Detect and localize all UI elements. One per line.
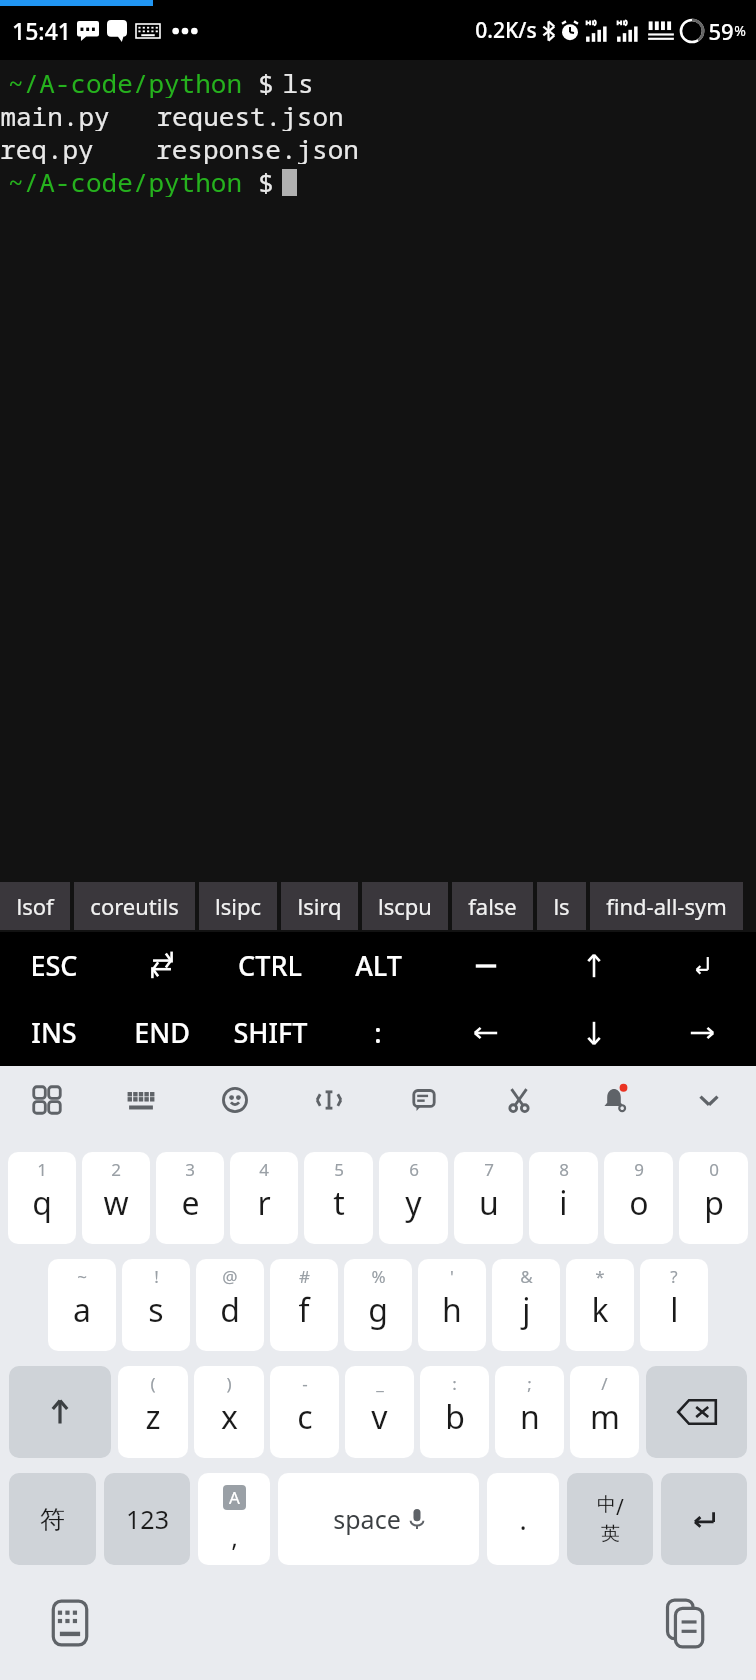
staticText: & [520,1265,533,1288]
staticText: w [103,1181,129,1225]
button[interactable]: 123 [104,1473,190,1565]
button[interactable]: Backspace [646,1366,747,1458]
button[interactable]: ALT [324,932,432,999]
button[interactable]: left [432,999,540,1066]
button[interactable]: Shift [9,1366,111,1458]
staticText: A [229,1486,240,1509]
button[interactable]: / [570,1366,639,1458]
staticText: v [371,1395,388,1439]
button[interactable]: _ [345,1366,414,1458]
staticText: f [298,1288,310,1332]
staticText: g [368,1288,388,1332]
button[interactable]: ESC [0,932,108,999]
button[interactable]: 符 [9,1473,96,1565]
staticText: 9 [634,1158,644,1181]
staticText: j [522,1288,531,1332]
staticText: z [145,1395,161,1439]
staticText: 1 [37,1158,47,1181]
staticText: d [220,1288,240,1332]
button[interactable]: emoji [188,1066,282,1134]
button[interactable]: ? [640,1259,708,1351]
staticText: t [333,1181,345,1225]
staticText: 15:41 [12,15,71,46]
button[interactable]: space [278,1473,479,1565]
button[interactable]: 3 [156,1152,224,1244]
button[interactable]: - [270,1366,339,1458]
staticText: ) [226,1372,232,1395]
button[interactable]: 7 [454,1152,523,1244]
button[interactable]: 0 [679,1152,748,1244]
button[interactable]: bell [566,1066,661,1134]
button[interactable]: SHIFT [216,999,324,1066]
button[interactable]: ls [537,882,586,930]
button[interactable]: lsirq [281,882,358,930]
button[interactable]: 9 [604,1152,673,1244]
button[interactable]: @ [196,1259,264,1351]
button[interactable]: Clipboard [658,1595,714,1651]
staticText: - [302,1372,308,1395]
button[interactable]: . [487,1473,559,1565]
button[interactable]: 6 [379,1152,448,1244]
button[interactable]: coreutils [74,882,195,930]
button[interactable]: : [420,1366,489,1458]
button[interactable]: Hide keyboard [42,1595,98,1651]
staticText: 123 [126,1502,169,1536]
button[interactable]: % [344,1259,412,1351]
button[interactable]: * [566,1259,634,1351]
button[interactable]: 4 [230,1152,298,1244]
button[interactable]: ' [418,1259,486,1351]
button[interactable]: down [661,1066,756,1134]
button[interactable]: minus [432,932,540,999]
button[interactable]: clipboardmsg [376,1066,471,1134]
button[interactable]: enter [648,932,756,999]
staticText: 8 [559,1158,569,1181]
button[interactable]: : [324,999,432,1066]
button[interactable]: lsipc [199,882,277,930]
button[interactable]: lsof [0,882,70,930]
button[interactable]: ( [118,1366,188,1458]
button[interactable]: cursor [282,1066,376,1134]
button[interactable]: 5 [304,1152,373,1244]
button[interactable]: cut [471,1066,566,1134]
button[interactable]: ~ [48,1259,116,1351]
staticText: i [559,1181,568,1225]
staticText: END [134,1014,190,1051]
staticText: # [299,1265,310,1288]
button[interactable]: # [270,1259,338,1351]
staticText: 0.2K/s [475,16,537,45]
staticText: 3 [185,1158,195,1181]
button[interactable]: up [540,932,648,999]
staticText: c [297,1395,313,1439]
button[interactable]: right [648,999,756,1066]
button[interactable]: down [540,999,648,1066]
button[interactable]: Enter [661,1473,747,1565]
button[interactable]: lscpu [362,882,448,930]
staticText: q [32,1181,52,1225]
staticText: x [221,1395,238,1439]
staticText: e [181,1181,200,1225]
button[interactable]: ; [495,1366,564,1458]
button[interactable]: & [492,1259,560,1351]
button[interactable]: A [198,1473,270,1565]
staticText: , [231,1520,238,1554]
button[interactable]: find-all-sym [590,882,743,930]
button[interactable]: 2 [82,1152,150,1244]
button[interactable]: false [452,882,533,930]
button[interactable]: tab [108,932,216,999]
button[interactable]: INS [0,999,108,1066]
staticText: 符 [40,1504,65,1535]
button[interactable]: CTRL [216,932,324,999]
button[interactable]: grid [0,1066,94,1134]
staticText: h [442,1288,462,1332]
staticText: y [405,1181,422,1225]
button[interactable]: kb [94,1066,188,1134]
button[interactable]: 1 [8,1152,76,1244]
button[interactable]: 8 [529,1152,598,1244]
button[interactable]: ) [194,1366,264,1458]
staticText: ~/A-code/python [0,164,250,197]
button[interactable]: END [108,999,216,1066]
button[interactable]: ! [122,1259,190,1351]
button[interactable]: 中 [567,1473,653,1565]
staticText: 英 [601,1522,620,1546]
staticText: a [73,1288,91,1332]
